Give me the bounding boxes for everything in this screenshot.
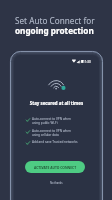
staticText: Stay secured at all times [10, 100, 103, 106]
button[interactable]: No thanks [10, 181, 103, 185]
staticText: No thanks [50, 181, 63, 185]
staticText: Auto-connect to VPN when using public Wi… [32, 117, 71, 125]
staticText: Add and save Trusted networks [32, 140, 78, 144]
staticText: Auto-connect to VPN when using cellular … [32, 129, 71, 137]
staticText: ACTIVATE AUTO CONNECT [34, 165, 77, 169]
staticText: Set Auto Connect for [15, 15, 95, 26]
staticText: ongoing protection [15, 25, 94, 36]
staticText: 11:30 [83, 60, 91, 64]
button[interactable]: ACTIVATE AUTO CONNECT [25, 161, 85, 173]
